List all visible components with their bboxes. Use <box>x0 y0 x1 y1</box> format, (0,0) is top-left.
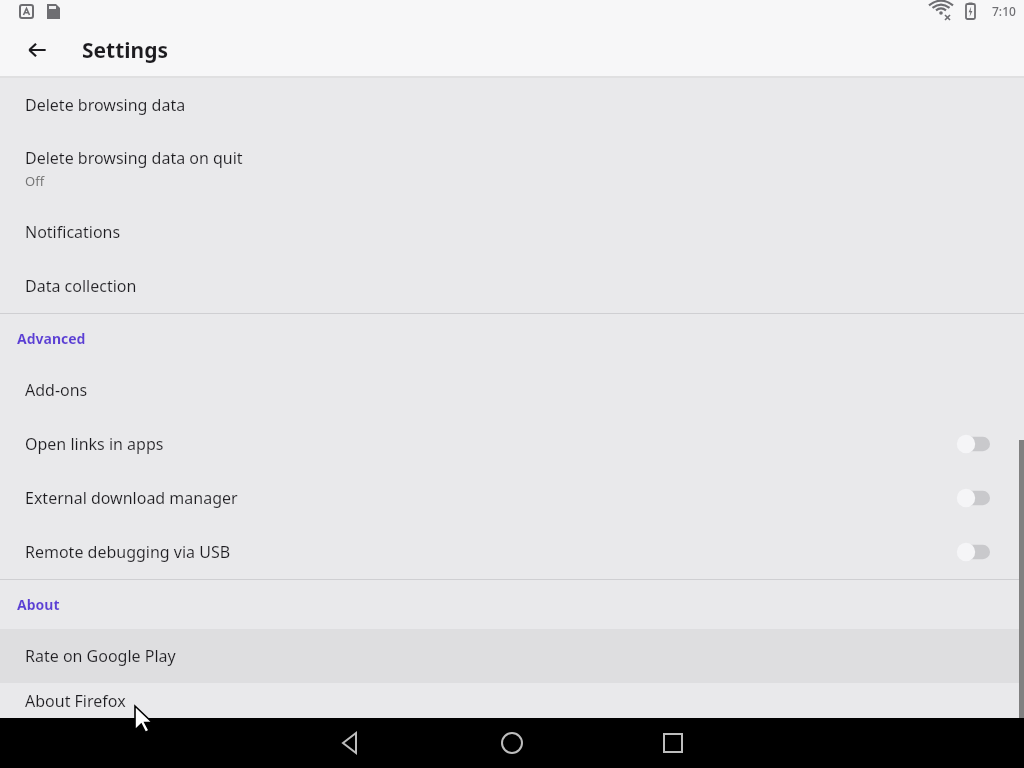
staticText: External download manager <box>25 487 956 509</box>
staticText: Rate on Google Play <box>25 645 176 667</box>
button[interactable]: Back <box>14 27 60 73</box>
button[interactable]: Rate on Google Play <box>0 629 1024 683</box>
button[interactable]: External download manager <box>0 471 1024 525</box>
staticText: Off <box>25 172 45 190</box>
staticText: Delete browsing data on quit <box>25 147 243 169</box>
staticText: Advanced <box>17 329 86 348</box>
staticText: About <box>17 595 60 614</box>
button[interactable]: Data collection <box>0 259 1024 313</box>
button[interactable]: Notifications <box>0 205 1024 259</box>
staticText: Settings <box>82 36 169 65</box>
staticText: Remote debugging via USB <box>25 541 956 563</box>
button[interactable]: Delete browsing data on quit <box>0 132 1024 205</box>
staticText: About Firefox <box>25 690 126 712</box>
button[interactable]: Open links in apps <box>0 417 1024 471</box>
staticText: Data collection <box>25 275 137 297</box>
button[interactable]: Add-ons <box>0 363 1024 417</box>
staticText: Open links in apps <box>25 433 956 455</box>
button[interactable]: Remote debugging via USB <box>0 525 1024 579</box>
staticText: Notifications <box>25 221 121 243</box>
button[interactable]: About Firefox <box>0 683 1024 718</box>
staticText: 7:10 <box>992 3 1016 19</box>
staticText: Delete browsing data <box>25 94 186 116</box>
button[interactable]: Delete browsing data <box>0 78 1024 132</box>
staticText: Add-ons <box>25 379 88 401</box>
